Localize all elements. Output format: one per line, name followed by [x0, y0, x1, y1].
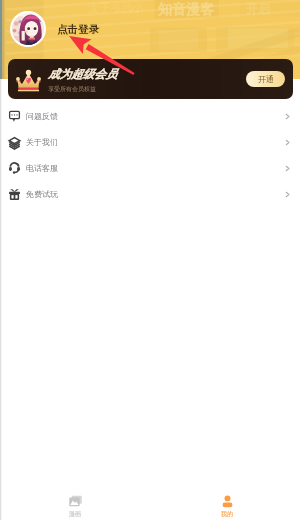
button[interactable]: 免费试玩: [0, 181, 300, 207]
button[interactable]: 我的: [205, 495, 249, 518]
staticText: 电话客服: [26, 163, 58, 173]
staticText: 开通: [258, 74, 274, 84]
button[interactable]: 成为超级会员: [8, 59, 293, 99]
staticText: 太子爷的小: [88, 1, 143, 15]
staticText: 我的: [221, 510, 233, 518]
staticText: 点击登录: [57, 23, 99, 36]
staticText: 开启: [246, 1, 270, 16]
button[interactable]: 关于我们: [0, 129, 300, 155]
button[interactable]: 问题反馈: [0, 103, 300, 129]
staticText: 享受所有会员权益: [48, 85, 96, 93]
button[interactable]: Profile avatar: [10, 11, 99, 47]
button[interactable]: 电话客服: [0, 155, 300, 181]
staticText: 漫画: [69, 510, 81, 518]
staticText: 成为超级会员: [48, 67, 117, 81]
staticText: 免费试玩: [26, 189, 58, 199]
other: Profile avatar: [12, 13, 44, 45]
staticText: 关于我们: [26, 137, 58, 147]
button[interactable]: 漫画: [53, 495, 97, 518]
staticText: 问题反馈: [26, 111, 58, 121]
button[interactable]: 开通: [246, 71, 285, 87]
staticText: 知音漫客: [158, 1, 214, 19]
